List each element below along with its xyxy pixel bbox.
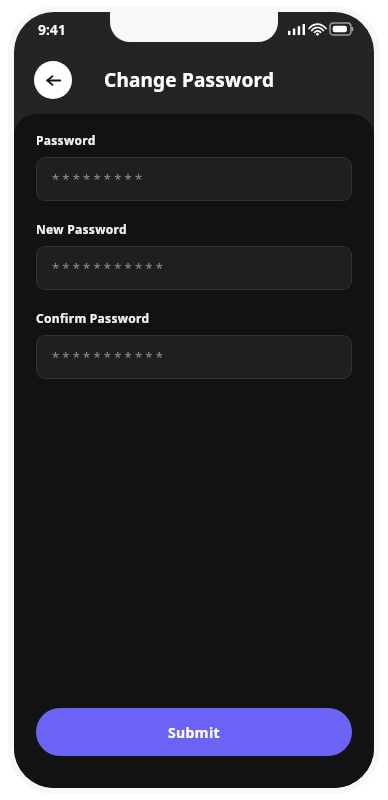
staticText: New Password xyxy=(36,221,127,237)
staticText: Change Password xyxy=(104,67,275,93)
staticText: *********** xyxy=(52,259,166,277)
staticText: *********** xyxy=(52,348,166,366)
button[interactable]: Submit xyxy=(36,708,352,756)
staticText: Confirm Password xyxy=(36,310,150,326)
button[interactable]: ********* xyxy=(36,157,352,201)
button[interactable]: Back xyxy=(34,61,72,99)
staticText: ********* xyxy=(52,170,146,188)
button[interactable]: *********** xyxy=(36,335,352,379)
staticText: 9:41 xyxy=(38,20,66,39)
button[interactable]: *********** xyxy=(36,246,352,290)
staticText: Submit xyxy=(168,723,220,742)
staticText: Password xyxy=(36,132,96,148)
